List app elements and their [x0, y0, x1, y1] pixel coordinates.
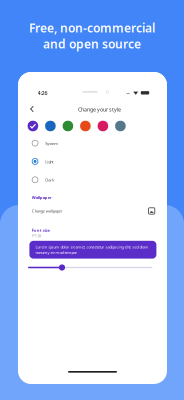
staticText: Change wallpaper — [32, 208, 63, 214]
button[interactable]: Theme colour — [80, 121, 91, 131]
staticText: Wallpaper — [32, 195, 52, 200]
staticText: 4:26 — [37, 89, 47, 97]
button[interactable]: Back — [23, 100, 40, 118]
staticText: Change your style — [78, 106, 121, 113]
button[interactable]: System — [18, 134, 138, 152]
staticText: (*1.0) — [32, 233, 41, 238]
button[interactable]: Light — [18, 152, 138, 171]
staticText: Lorem ipsum dolor sit amet, consetetur s… — [35, 244, 148, 255]
staticText: Dark — [45, 177, 54, 183]
button[interactable]: Theme colour — [45, 121, 56, 131]
staticText: and open source — [43, 36, 141, 52]
button[interactable]: Theme colour — [63, 121, 73, 131]
staticText: Font size — [32, 227, 50, 233]
button[interactable]: Theme colour — [28, 121, 38, 131]
staticText: Free, non-commercial — [29, 20, 155, 36]
button[interactable]: Dark — [18, 171, 138, 189]
button[interactable]: Change wallpaper — [18, 204, 167, 219]
button[interactable]: Theme colour — [98, 121, 108, 131]
staticText: System — [45, 141, 58, 146]
staticText: Light — [45, 159, 53, 164]
button[interactable]: Theme colour — [115, 121, 126, 131]
